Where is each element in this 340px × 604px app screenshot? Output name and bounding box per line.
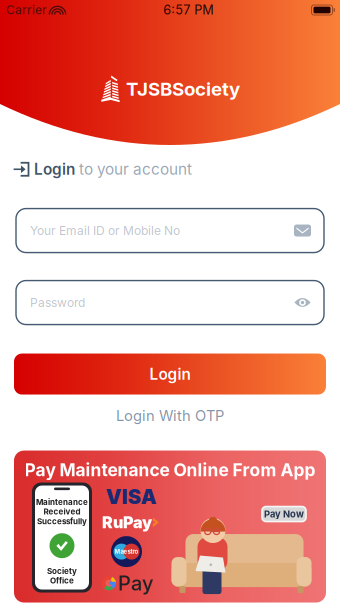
staticText: Carrier — [6, 3, 47, 17]
button[interactable]: Password — [0, 281, 340, 325]
staticText: RuPay — [102, 513, 152, 532]
staticText: VISA — [106, 485, 157, 509]
button[interactable]: Your Email ID or Mobile No — [0, 209, 340, 253]
staticText: TJSBSociety — [126, 78, 240, 100]
staticText: Maestro — [114, 548, 138, 555]
staticText: Received — [43, 507, 80, 516]
staticText: Successfully — [37, 516, 87, 526]
button[interactable]: Login — [0, 354, 340, 395]
button[interactable]: Pay Now — [262, 507, 306, 522]
staticText: Office — [50, 576, 74, 586]
button[interactable]: TJSB Society — [0, 75, 340, 103]
staticText: Password — [30, 295, 85, 310]
button[interactable]: Login With OTP — [0, 405, 340, 427]
staticText: Your Email ID or Mobile No — [30, 223, 180, 238]
staticText: Society — [47, 566, 77, 576]
staticText: Pay Maintenance Online From App — [24, 460, 315, 481]
staticText: Maintenance — [36, 497, 88, 507]
staticText: Login — [34, 160, 75, 179]
staticText: Pay — [118, 571, 153, 595]
staticText: Login — [149, 365, 190, 383]
staticText: Login With OTP — [116, 407, 224, 424]
staticText: 6:57 PM — [163, 2, 213, 18]
staticText: Pay Now — [264, 508, 304, 520]
staticText: to your account — [79, 160, 192, 179]
